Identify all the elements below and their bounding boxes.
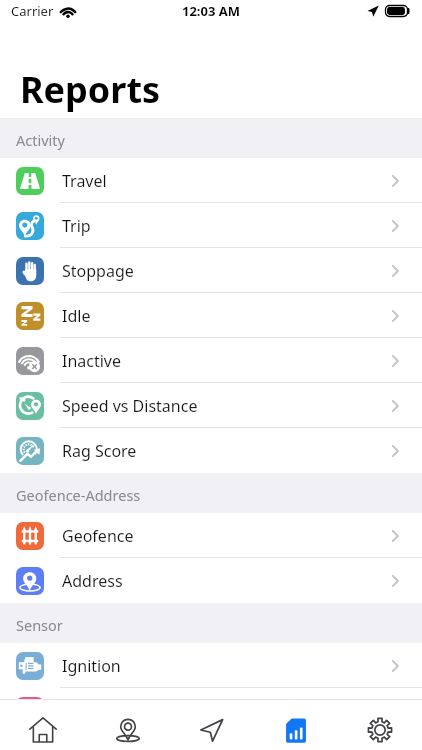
button[interactable]: Settings	[338, 700, 422, 750]
button[interactable]: Ignition	[0, 643, 422, 688]
button[interactable]: Reports	[254, 700, 338, 750]
staticText: Carrier	[11, 2, 54, 20]
staticText: Address	[62, 570, 123, 592]
button[interactable]: Inactive	[0, 338, 422, 383]
button[interactable]: Stoppage	[0, 248, 422, 293]
staticText: Rag Score	[62, 440, 137, 462]
staticText: Travel	[62, 170, 107, 192]
staticText: Geofence-Address	[16, 485, 141, 505]
staticText: Ignition	[62, 655, 121, 677]
button[interactable]: Idle	[0, 293, 422, 338]
button[interactable]: Address	[0, 558, 422, 603]
button[interactable]: Geofence	[0, 513, 422, 558]
staticText: Geofence	[62, 525, 134, 547]
staticText: Trip	[62, 215, 91, 237]
staticText: Activity	[16, 130, 65, 150]
button[interactable]: Places	[85, 700, 170, 750]
button[interactable]: Trip	[0, 203, 422, 248]
staticText: Idle	[62, 305, 91, 327]
staticText: Inactive	[62, 350, 122, 372]
staticText: Speed vs Distance	[62, 395, 198, 417]
staticText: 12:03 AM	[182, 2, 241, 20]
button[interactable]: Speed vs Distance	[0, 383, 422, 428]
button[interactable]: Panic	[0, 688, 422, 699]
button[interactable]: Home	[0, 700, 85, 750]
button[interactable]: Travel	[0, 158, 422, 203]
button[interactable]: Navigate	[170, 700, 254, 750]
button[interactable]: Rag Score	[0, 428, 422, 473]
staticText: Sensor	[16, 615, 63, 635]
staticText: Stoppage	[62, 260, 134, 282]
staticText: Reports	[20, 65, 161, 114]
